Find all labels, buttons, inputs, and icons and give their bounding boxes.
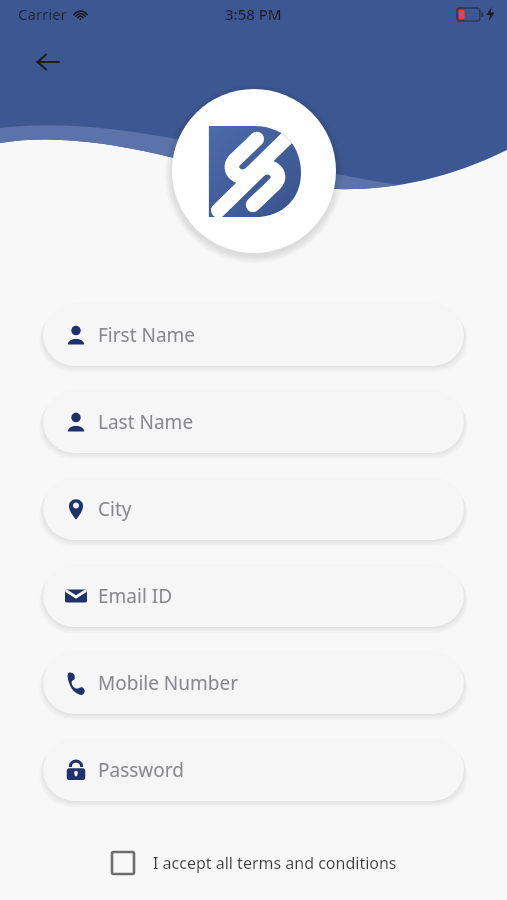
button[interactable]: First Name [43, 303, 464, 366]
staticText: Carrier [18, 4, 67, 24]
staticText: Last Name [98, 409, 194, 435]
staticText: I accept all terms and conditions [153, 852, 397, 874]
staticText: Email ID [98, 583, 173, 609]
button[interactable]: Mobile Number [43, 651, 464, 714]
staticText: First Name [98, 322, 196, 348]
button[interactable]: I accept all terms and conditions [103, 845, 405, 881]
staticText: 3:58 PM [225, 4, 282, 24]
button[interactable]: City [43, 477, 464, 540]
button[interactable]: Last Name [43, 390, 464, 453]
button[interactable]: Email ID [43, 564, 464, 627]
staticText: Mobile Number [98, 670, 239, 696]
button[interactable]: Back [26, 40, 70, 84]
staticText: City [98, 496, 132, 522]
staticText: Password [98, 757, 184, 783]
button[interactable]: Password [43, 738, 464, 801]
